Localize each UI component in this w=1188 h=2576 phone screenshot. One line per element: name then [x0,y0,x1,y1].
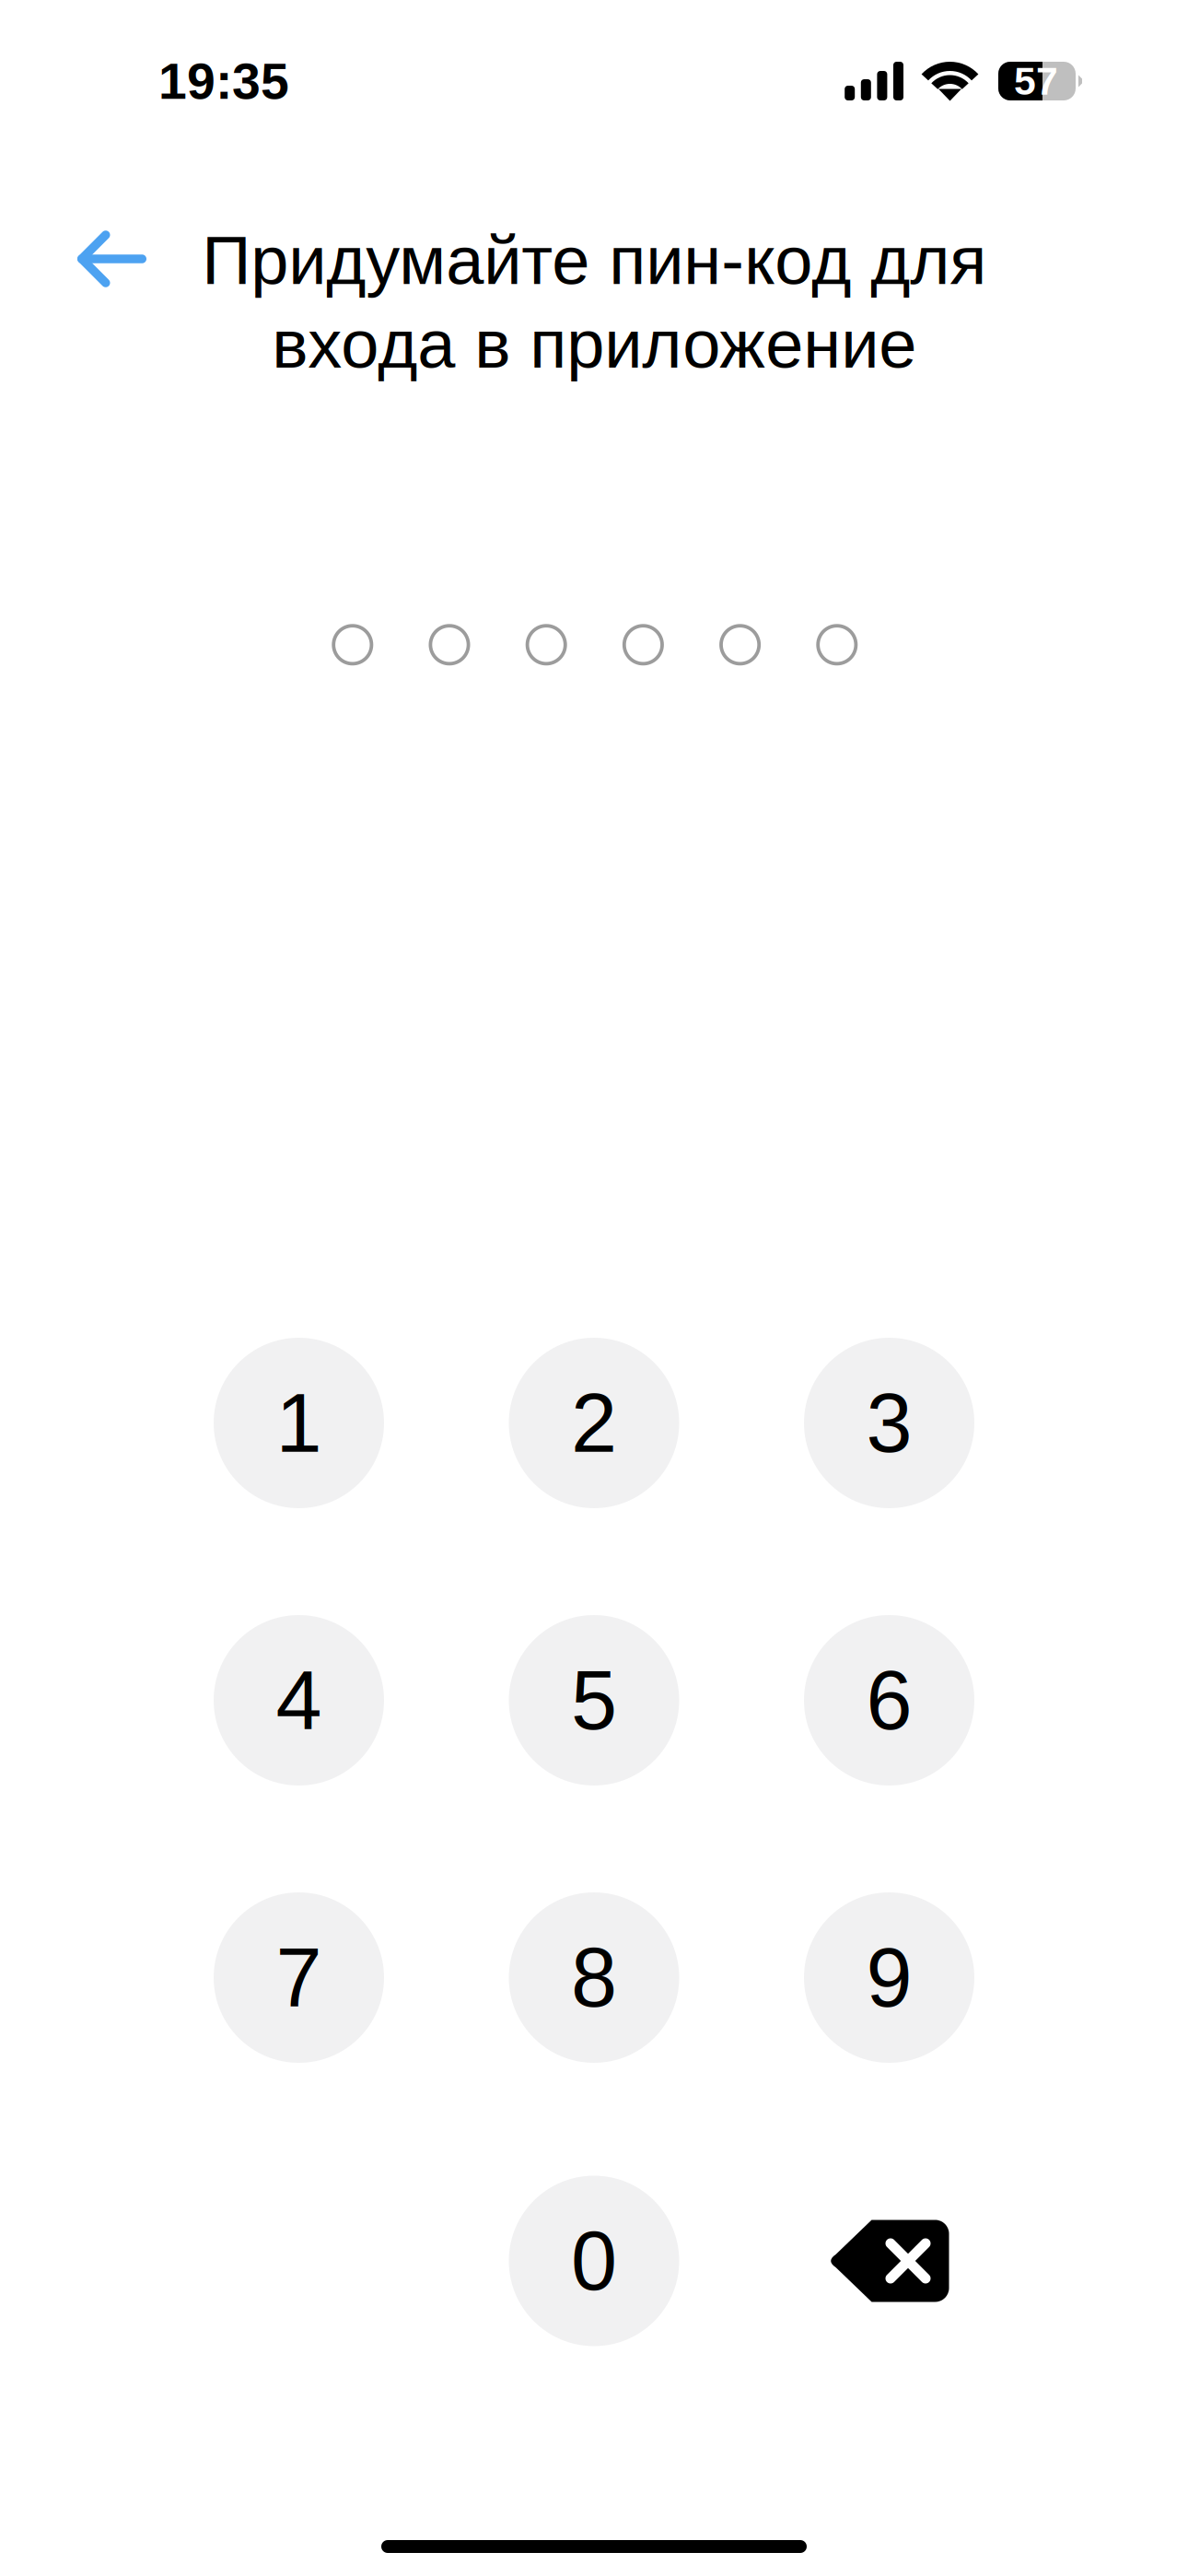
staticText: 3 [866,1377,912,1469]
staticText: 8 [571,1931,617,2024]
staticText: 9 [866,1931,912,2024]
button[interactable]: 8 [509,1892,679,2063]
staticText: 1 [276,1377,322,1469]
button[interactable]: 9 [804,1892,974,2063]
button[interactable]: Back [60,207,163,310]
staticText: 57 [1014,59,1058,103]
button[interactable]: 2 [509,1338,679,1508]
button[interactable]: 3 [804,1338,974,1508]
staticText: 0 [571,2215,617,2307]
button[interactable]: 5 [509,1615,679,1786]
button[interactable]: 1 [214,1338,384,1508]
button[interactable]: Delete [804,2176,974,2346]
button[interactable]: 7 [214,1892,384,2063]
staticText: 5 [571,1654,617,1747]
staticText: 7 [276,1931,322,2024]
staticText: 4 [276,1654,322,1747]
staticText: 19:35 [158,53,289,110]
staticText: 2 [571,1377,617,1469]
button[interactable]: 6 [804,1615,974,1786]
staticText: Придумайте пин-код для входа в приложени… [202,222,986,382]
staticText: 6 [866,1654,912,1747]
button[interactable]: 4 [214,1615,384,1786]
button[interactable]: 0 [509,2176,679,2346]
